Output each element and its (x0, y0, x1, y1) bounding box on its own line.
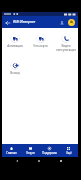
button[interactable]: Услуги (21, 144, 40, 157)
button[interactable]: Ещё (59, 144, 78, 157)
button[interactable]: Активация (2, 33, 27, 48)
button[interactable]: Account (57, 18, 66, 27)
button[interactable]: Выход (2, 60, 27, 75)
button[interactable]: Главная (2, 144, 21, 157)
button[interactable]: Back (11, 157, 22, 165)
button[interactable]: Видео консультация (53, 33, 78, 52)
staticText: Поддержка (42, 151, 57, 155)
button[interactable]: Back (2, 17, 13, 28)
staticText: Активация (7, 44, 23, 48)
button[interactable]: Recents (55, 157, 66, 165)
button[interactable]: Sim-карта (28, 33, 53, 48)
staticText: Услуги (26, 151, 35, 155)
staticText: Sim-карта (33, 44, 48, 48)
staticText: Главная (6, 151, 17, 155)
staticText: WiFi Интернет (13, 20, 36, 24)
staticText: Ещё (66, 151, 72, 155)
staticText: Видео консультация (56, 44, 76, 52)
button[interactable]: Поддержка (40, 144, 59, 157)
button[interactable]: Profile (67, 18, 76, 27)
staticText: Выход (10, 71, 20, 75)
button[interactable]: Home (33, 157, 44, 165)
